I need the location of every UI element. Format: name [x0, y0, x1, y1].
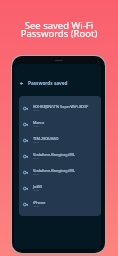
- button[interactable]: KOHKBJIN/U'N SuperWiFi-8D3F: [19, 100, 101, 116]
- staticText: Vodafone-Bangiorgi39L: [33, 152, 76, 157]
- staticText: Passwords saved: [28, 80, 68, 86]
- button[interactable]: Vodafone-Bangiorgi39L: [19, 148, 101, 164]
- staticText: ••••••: [33, 141, 39, 145]
- staticText: ••••••: [33, 125, 39, 129]
- staticText: ••••••: [33, 189, 39, 193]
- staticText: Vodafone-Bangiorgi39L: [33, 168, 76, 173]
- staticText: ••••••: [33, 205, 39, 209]
- button[interactable]: Marco: [19, 116, 101, 132]
- staticText: KOHKBJIN/U'N SuperWiFi-8D3F: [33, 104, 89, 109]
- button[interactable]: Back: [14, 75, 101, 91]
- button[interactable]: TIM-28063660: [19, 132, 101, 148]
- staticText: TIM-28063660: [33, 136, 59, 141]
- staticText: See saved Wi-Fi Passwords (Root): [0, 19, 118, 39]
- staticText: ••••••: [33, 157, 39, 161]
- staticText: Marco: [33, 120, 45, 125]
- staticText: ••••••: [33, 173, 39, 177]
- staticText: ••••••: [33, 109, 39, 113]
- staticText: JuliM: [33, 184, 42, 189]
- staticText: iPhone: [33, 200, 46, 205]
- button[interactable]: Vodafone-Bangiorgi39L: [19, 164, 101, 180]
- button[interactable]: JuliM: [19, 180, 101, 196]
- button[interactable]: Back: [18, 80, 25, 87]
- button[interactable]: iPhone: [19, 196, 101, 212]
